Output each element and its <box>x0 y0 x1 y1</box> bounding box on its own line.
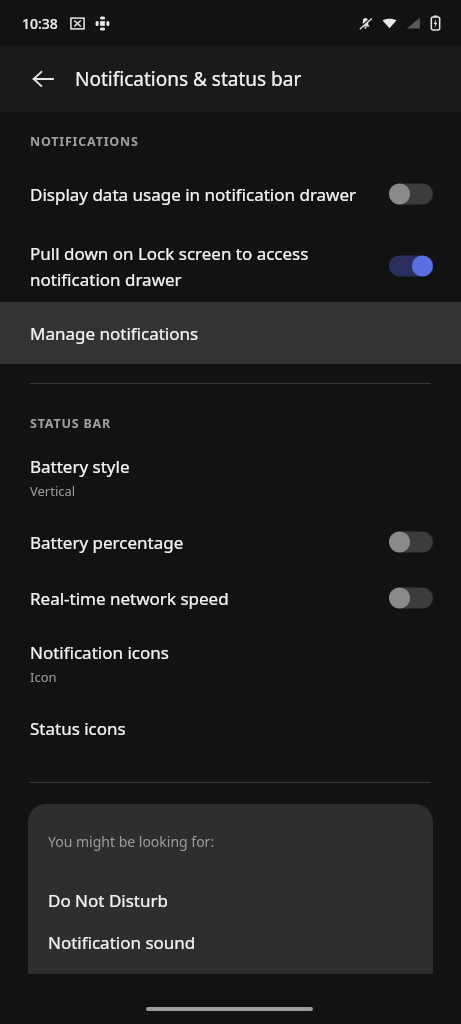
button[interactable]: Notification icons <box>0 626 461 700</box>
button[interactable]: Battery style <box>0 440 461 514</box>
staticText: Battery style <box>30 455 130 478</box>
staticText: STATUS BAR <box>30 415 111 432</box>
staticText: Pull down on Lock screen to access notif… <box>30 242 367 291</box>
button[interactable]: Pull down on Lock screen to access notif… <box>0 230 461 302</box>
staticText: Notification sound <box>48 931 196 954</box>
button[interactable]: Real-time network speed <box>0 570 461 626</box>
staticText: Notifications & status bar <box>75 66 302 92</box>
staticText: 10:38 <box>22 14 58 33</box>
button[interactable]: Manage notifications <box>0 302 461 364</box>
button[interactable]: Back <box>21 57 65 101</box>
button[interactable]: Notification sound <box>28 921 433 963</box>
button[interactable]: Battery percentage <box>0 514 461 570</box>
staticText: Battery percentage <box>30 531 367 554</box>
other: Off <box>389 530 433 554</box>
staticText: Display data usage in notification drawe… <box>30 183 367 206</box>
staticText: Icon <box>30 668 57 686</box>
staticText: Notification icons <box>30 641 169 664</box>
staticText: Status icons <box>30 717 126 740</box>
staticText: Vertical <box>30 482 76 500</box>
button[interactable]: Display data usage in notification drawe… <box>0 158 461 230</box>
staticText: Manage notifications <box>30 322 199 345</box>
staticText: Do Not Disturb <box>48 889 168 912</box>
staticText: Real-time network speed <box>30 587 367 610</box>
staticText: NOTIFICATIONS <box>30 133 139 150</box>
other: On <box>389 254 433 278</box>
button[interactable]: Do Not Disturb <box>28 879 433 921</box>
staticText: You might be looking for: <box>48 832 215 851</box>
button[interactable]: Status icons <box>0 700 461 756</box>
other: Off <box>389 586 433 610</box>
other: Off <box>389 182 433 206</box>
